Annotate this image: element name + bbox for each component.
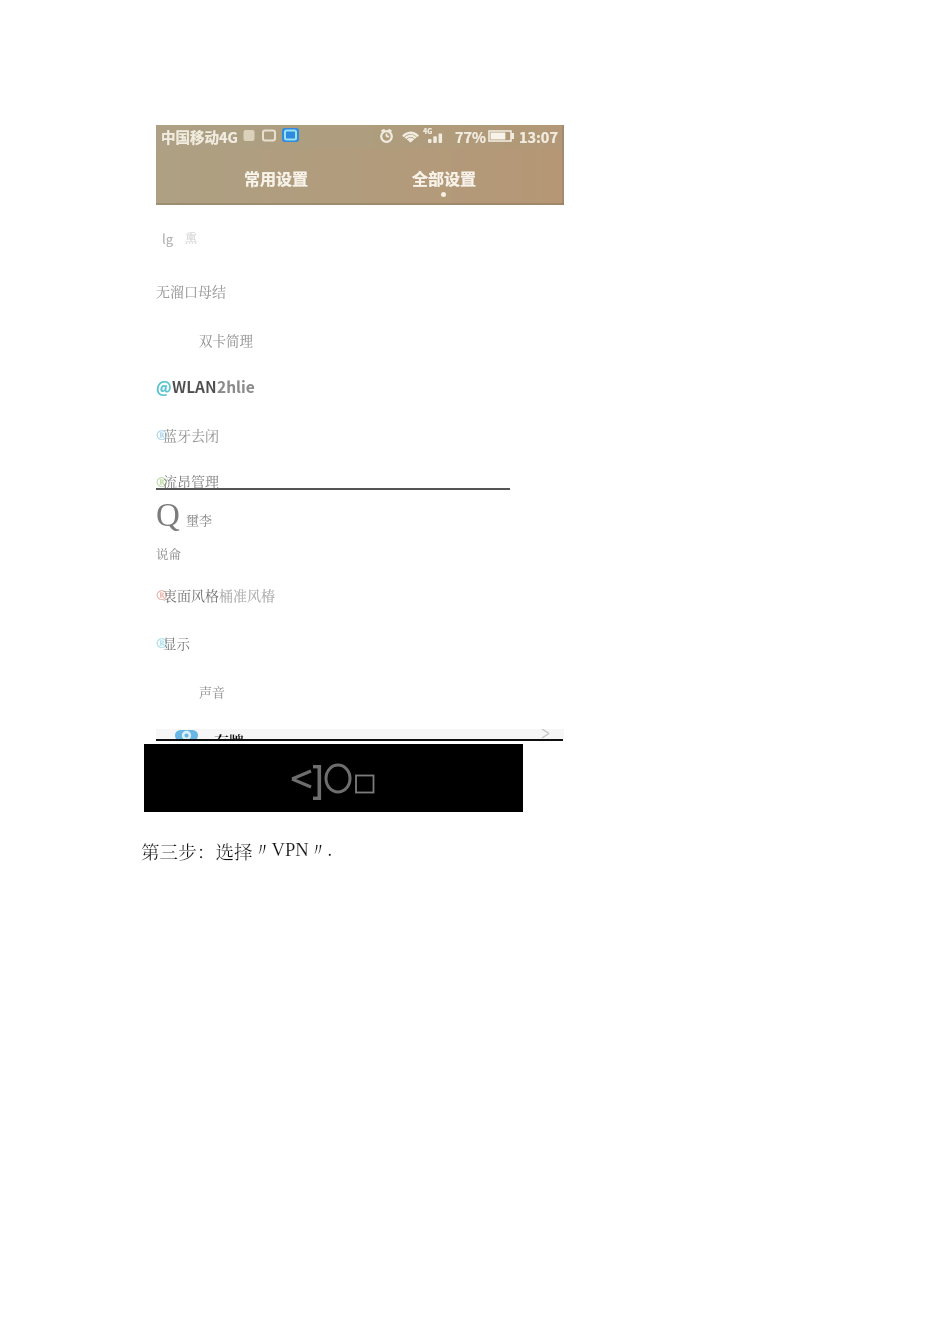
staticText: 13:07: [519, 126, 558, 147]
button[interactable]: 说侖: [156, 542, 564, 568]
button[interactable]: 壐李: [156, 498, 564, 532]
staticText: 壐李: [186, 510, 213, 529]
button[interactable]: 双卡简理: [156, 324, 564, 356]
staticText: 双卡简理: [199, 330, 253, 349]
staticText: 〃VPN〃.: [253, 838, 333, 861]
button[interactable]: 全部设置: [379, 149, 509, 205]
staticText: 常用设置: [244, 166, 309, 189]
button[interactable]: WLAN: [156, 372, 564, 400]
staticText: 第三步：选择: [141, 838, 253, 865]
staticText: 说侖: [156, 545, 182, 563]
staticText: 有牌: [214, 730, 245, 740]
button[interactable]: 声音: [156, 679, 564, 705]
staticText: lg: [162, 229, 174, 248]
staticText: 77%: [455, 126, 487, 147]
button[interactable]: 流昂管理: [156, 468, 564, 494]
button[interactable]: 显示: [156, 630, 564, 656]
staticText: 4G: [423, 126, 433, 136]
staticText: ®: [156, 422, 168, 450]
button[interactable]: 有牌: [156, 729, 564, 740]
button[interactable]: 衷面风格: [156, 582, 564, 608]
staticText: ®: [156, 582, 168, 608]
staticText: 桶准风椿: [219, 585, 275, 605]
staticText: 2hlie: [217, 375, 255, 397]
staticText: 显示: [163, 633, 190, 652]
staticText: WLAN: [172, 375, 217, 397]
staticText: 流昂管理: [163, 471, 219, 491]
staticText: 衷面风格: [163, 585, 219, 605]
button[interactable]: Home: [322, 762, 354, 794]
button[interactable]: 账号: [156, 222, 564, 250]
staticText: 声音: [199, 682, 226, 701]
staticText: ®: [156, 469, 168, 495]
staticText: 蓝牙去闭: [163, 425, 219, 445]
staticText: 熏: [185, 229, 198, 246]
staticText: Q: [156, 497, 180, 531]
staticText: ®: [156, 630, 168, 656]
staticText: 中国移动4G: [161, 126, 238, 147]
button[interactable]: Recent apps: [352, 770, 376, 792]
staticText: 无溜口母结: [156, 281, 226, 301]
button[interactable]: Back: [288, 764, 312, 792]
button[interactable]: 常用设置: [176, 149, 376, 205]
staticText: 全部设置: [412, 166, 477, 189]
button[interactable]: 无溜口母结: [156, 276, 564, 308]
button[interactable]: 蓝牙去闭: [156, 421, 564, 449]
staticText: @: [156, 375, 172, 397]
